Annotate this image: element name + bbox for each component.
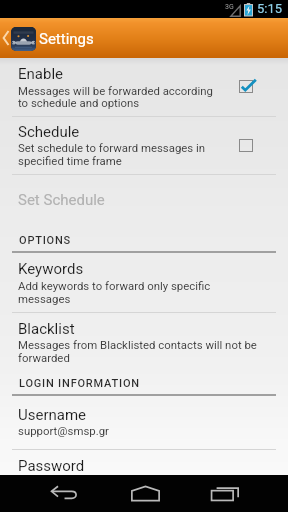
button[interactable]: Navigate up <box>0 18 12 58</box>
staticText: LOGIN INFORMATION <box>19 377 140 390</box>
staticText: Keywords <box>18 260 84 278</box>
staticText: Enable <box>18 65 63 83</box>
button[interactable]: Back <box>34 475 94 512</box>
button[interactable]: Keywords <box>0 252 288 312</box>
button[interactable]: Home <box>115 475 175 512</box>
button[interactable]: Password <box>0 449 288 476</box>
button[interactable]: Blacklist <box>0 312 288 371</box>
staticText: 5:15 <box>257 1 283 16</box>
button[interactable]: Checked <box>231 72 260 101</box>
staticText: Set schedule to forward messages in <box>18 141 206 154</box>
button[interactable]: Set Schedule <box>0 174 288 222</box>
staticText: Blacklist <box>18 320 75 338</box>
staticText: Set Schedule <box>18 191 105 209</box>
staticText: forwarded <box>18 351 70 364</box>
staticText: Password <box>18 457 85 475</box>
staticText: specified time frame <box>18 154 122 167</box>
button[interactable]: Enable <box>0 58 288 116</box>
button[interactable]: Username <box>0 395 288 449</box>
button[interactable]: Schedule <box>0 116 288 175</box>
staticText: Messages from Blacklisted contacts will … <box>18 338 257 351</box>
staticText: Messages will be forwarded according <box>18 84 213 97</box>
staticText: OPTIONS <box>19 234 72 247</box>
staticText: 3G <box>225 3 234 11</box>
staticText: messages <box>18 292 71 305</box>
staticText: support@smsp.gr <box>18 424 109 437</box>
button[interactable]: Not checked <box>231 131 260 160</box>
button[interactable]: Recent apps <box>195 475 255 512</box>
staticText: Add keywords to forward only specific <box>18 279 211 292</box>
staticText: to schedule and options <box>18 96 140 109</box>
staticText: Settings <box>39 30 94 48</box>
staticText: Username <box>18 406 87 424</box>
staticText: Schedule <box>18 123 80 141</box>
